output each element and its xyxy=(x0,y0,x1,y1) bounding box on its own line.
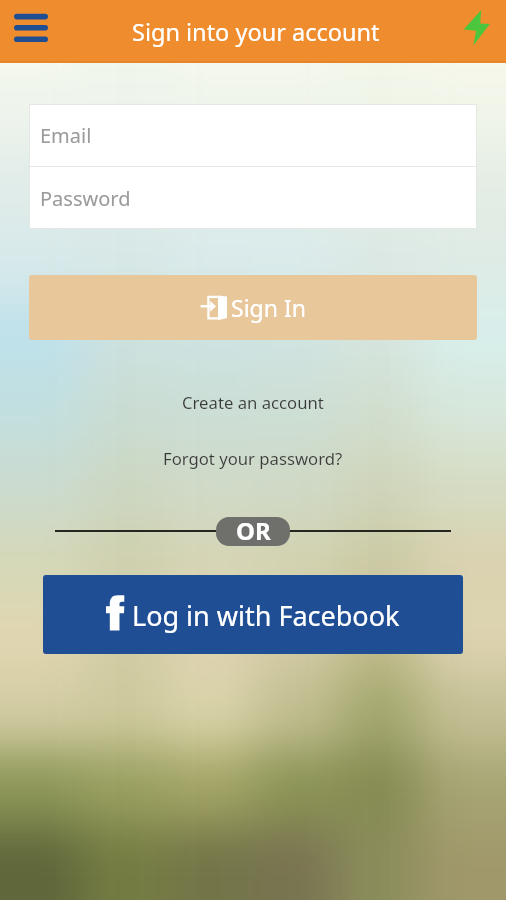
button[interactable]: Email xyxy=(29,104,477,166)
button[interactable]: Log in with Facebook xyxy=(43,575,463,654)
button[interactable]: Sign In xyxy=(29,275,477,340)
staticText: Sign In xyxy=(231,292,306,323)
button[interactable]: OR xyxy=(216,517,290,546)
staticText: Sign into your account xyxy=(132,16,380,48)
button[interactable]: Open navigation menu xyxy=(0,0,62,56)
staticText: Email xyxy=(40,122,92,149)
staticText: Forgot your password? xyxy=(163,447,343,470)
staticText: Log in with Facebook xyxy=(132,597,400,634)
staticText: Password xyxy=(40,185,131,212)
button[interactable]: Forgot your password? xyxy=(0,445,506,471)
staticText: Create an account xyxy=(182,391,324,414)
button[interactable]: Create an account xyxy=(0,389,506,415)
button[interactable]: Quick sign in xyxy=(450,0,506,56)
staticText: OR xyxy=(236,517,271,543)
button[interactable]: Password xyxy=(29,167,477,229)
